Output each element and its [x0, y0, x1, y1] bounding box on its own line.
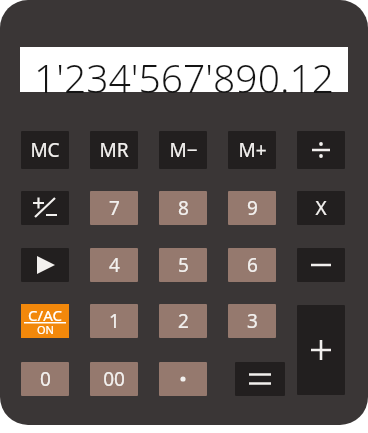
button[interactable]: Minus [297, 248, 345, 282]
button[interactable]: 6 [228, 248, 276, 282]
button[interactable]: 0 [21, 362, 69, 396]
staticText: MC [30, 137, 60, 163]
button[interactable]: Decimal point [159, 362, 207, 396]
staticText: ON [37, 322, 54, 337]
staticText: 2 [178, 308, 189, 334]
button[interactable]: 8 [159, 191, 207, 225]
staticText: M− [169, 137, 198, 163]
button[interactable]: 00 [90, 362, 138, 396]
button[interactable]: Play [21, 248, 69, 282]
staticText: 00 [103, 366, 125, 392]
staticText: 1 [109, 308, 120, 334]
staticText: 4 [109, 252, 120, 278]
staticText: C/AC [28, 305, 62, 325]
staticText: 1'234'567'890.12 [20, 51, 348, 96]
button[interactable]: 3 [228, 304, 276, 338]
button[interactable]: M− [159, 131, 207, 169]
staticText: 0 [40, 366, 51, 392]
button[interactable]: MC [21, 131, 69, 169]
button[interactable]: MR [90, 131, 138, 169]
button[interactable]: 9 [228, 191, 276, 225]
button[interactable]: Equals [235, 362, 285, 396]
button[interactable]: 4 [90, 248, 138, 282]
staticText: MR [99, 137, 129, 163]
button[interactable]: 7 [90, 191, 138, 225]
button[interactable]: 2 [159, 304, 207, 338]
staticText: 3 [247, 308, 258, 334]
staticText: X [315, 195, 327, 221]
button[interactable]: 5 [159, 248, 207, 282]
staticText: 5 [178, 252, 189, 278]
staticText: 9 [247, 195, 258, 221]
button[interactable]: X [297, 191, 345, 225]
staticText: M+ [238, 137, 267, 163]
button[interactable]: M+ [228, 131, 276, 169]
button[interactable]: C/AC [21, 304, 69, 338]
button[interactable]: 1 [90, 304, 138, 338]
staticText: 6 [247, 252, 258, 278]
button[interactable]: Plus [297, 305, 345, 395]
button[interactable]: Plus minus sign [21, 191, 69, 225]
staticText: 8 [178, 195, 189, 221]
staticText: 7 [109, 195, 120, 221]
button[interactable]: Divide [297, 131, 345, 169]
